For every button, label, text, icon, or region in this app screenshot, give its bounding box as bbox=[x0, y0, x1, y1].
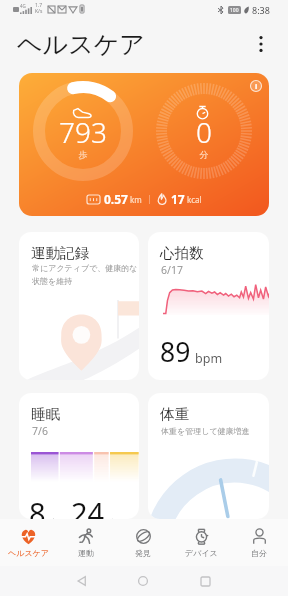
staticText: 8 bbox=[29, 493, 46, 519]
staticText: bpm bbox=[195, 350, 223, 367]
button[interactable]: 心拍数 bbox=[148, 232, 269, 380]
staticText: 発見 bbox=[135, 548, 151, 558]
staticText: 8:38 bbox=[252, 4, 270, 16]
button[interactable]: 睡眠 bbox=[19, 393, 139, 519]
staticText: km bbox=[130, 194, 142, 205]
staticText: 運動 bbox=[78, 548, 94, 558]
staticText: 17 bbox=[171, 191, 185, 207]
button[interactable]: 運動記録 bbox=[19, 232, 139, 380]
staticText: 時間 bbox=[48, 517, 66, 519]
staticText: 6/17 bbox=[161, 263, 183, 277]
staticText: ヘルスケア bbox=[17, 29, 145, 60]
staticText: 793 bbox=[33, 113, 133, 151]
staticText: 運動記録 bbox=[31, 244, 89, 262]
staticText: 体重を管理して健康増進 bbox=[161, 426, 250, 436]
staticText: 0 bbox=[154, 113, 254, 151]
staticText: 7/6 bbox=[32, 424, 48, 438]
staticText: 24 bbox=[71, 493, 105, 519]
staticText: i bbox=[255, 81, 258, 91]
staticText: kcal bbox=[187, 194, 202, 205]
staticText: ヘルスケア bbox=[8, 548, 49, 558]
staticText: 常にアクティブで、健康的な 状態を維持 bbox=[32, 263, 138, 286]
button[interactable]: 体重 bbox=[148, 393, 269, 519]
button[interactable]: 自分 bbox=[230, 528, 288, 558]
staticText: 体重 bbox=[160, 405, 189, 423]
button[interactable]: Back bbox=[66, 566, 96, 596]
button[interactable]: 運動 bbox=[57, 528, 114, 558]
staticText: 0.57 bbox=[104, 191, 128, 207]
button[interactable]: Recents bbox=[190, 566, 220, 596]
staticText: 心拍数 bbox=[160, 244, 204, 262]
staticText: 歩 bbox=[33, 149, 133, 160]
staticText: K/s bbox=[35, 8, 43, 15]
staticText: 1.7 bbox=[35, 2, 43, 9]
staticText: 分 bbox=[107, 517, 116, 519]
staticText: 89 bbox=[160, 334, 191, 370]
button[interactable]: ヘルスケア bbox=[0, 528, 57, 558]
button[interactable]: Info bbox=[247, 77, 265, 95]
button[interactable]: デバイス bbox=[172, 528, 230, 558]
staticText: 分 bbox=[154, 149, 254, 160]
staticText: デバイス bbox=[185, 548, 218, 558]
button[interactable]: More options bbox=[248, 31, 274, 57]
staticText: 自分 bbox=[251, 548, 267, 558]
button[interactable]: Info bbox=[19, 73, 269, 216]
button[interactable]: Home bbox=[128, 566, 158, 596]
staticText: 100 bbox=[230, 7, 239, 14]
staticText: 4G bbox=[20, 3, 26, 9]
button[interactable]: 発見 bbox=[114, 528, 172, 558]
staticText: 睡眠 bbox=[31, 405, 60, 423]
